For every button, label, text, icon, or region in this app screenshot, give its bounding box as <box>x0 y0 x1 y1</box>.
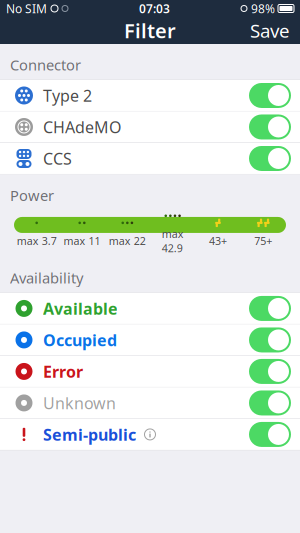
staticText: CCS <box>43 148 72 169</box>
staticText: Unknown <box>43 392 116 413</box>
staticText: Semi-public <box>43 424 136 445</box>
button[interactable]: CHAdeMO <box>0 111 300 143</box>
staticText: CHAdeMO <box>43 116 121 138</box>
button[interactable]: Occupied <box>0 324 300 356</box>
staticText: Power <box>10 185 54 205</box>
staticText: Connector <box>10 55 81 74</box>
button[interactable]: CCS <box>0 143 300 174</box>
staticText: 75+ <box>254 234 272 248</box>
staticText: 98% <box>251 0 275 16</box>
staticText: Available <box>43 298 118 319</box>
button[interactable]: Semi-public <box>0 419 300 450</box>
staticText: max 22 <box>109 234 146 248</box>
staticText: Error <box>43 361 83 382</box>
staticText: Type 2 <box>43 85 92 106</box>
staticText: No SIM <box>6 0 47 16</box>
staticText: Save <box>250 18 290 43</box>
staticText: 07:03 <box>139 0 170 16</box>
staticText: Filter <box>124 17 176 44</box>
button[interactable]: Available <box>0 293 300 324</box>
staticText: max 3.7 <box>17 234 57 248</box>
staticText: max 11 <box>63 234 100 248</box>
staticText: max 42.9 <box>162 227 184 255</box>
staticText: 43+ <box>209 234 227 248</box>
staticText: Availability <box>10 268 83 287</box>
staticText: Occupied <box>43 329 117 350</box>
button[interactable]: Unknown <box>0 387 300 419</box>
button[interactable]: Error <box>0 356 300 387</box>
button[interactable]: Type 2 <box>0 80 300 111</box>
button[interactable]: Save <box>240 12 300 49</box>
